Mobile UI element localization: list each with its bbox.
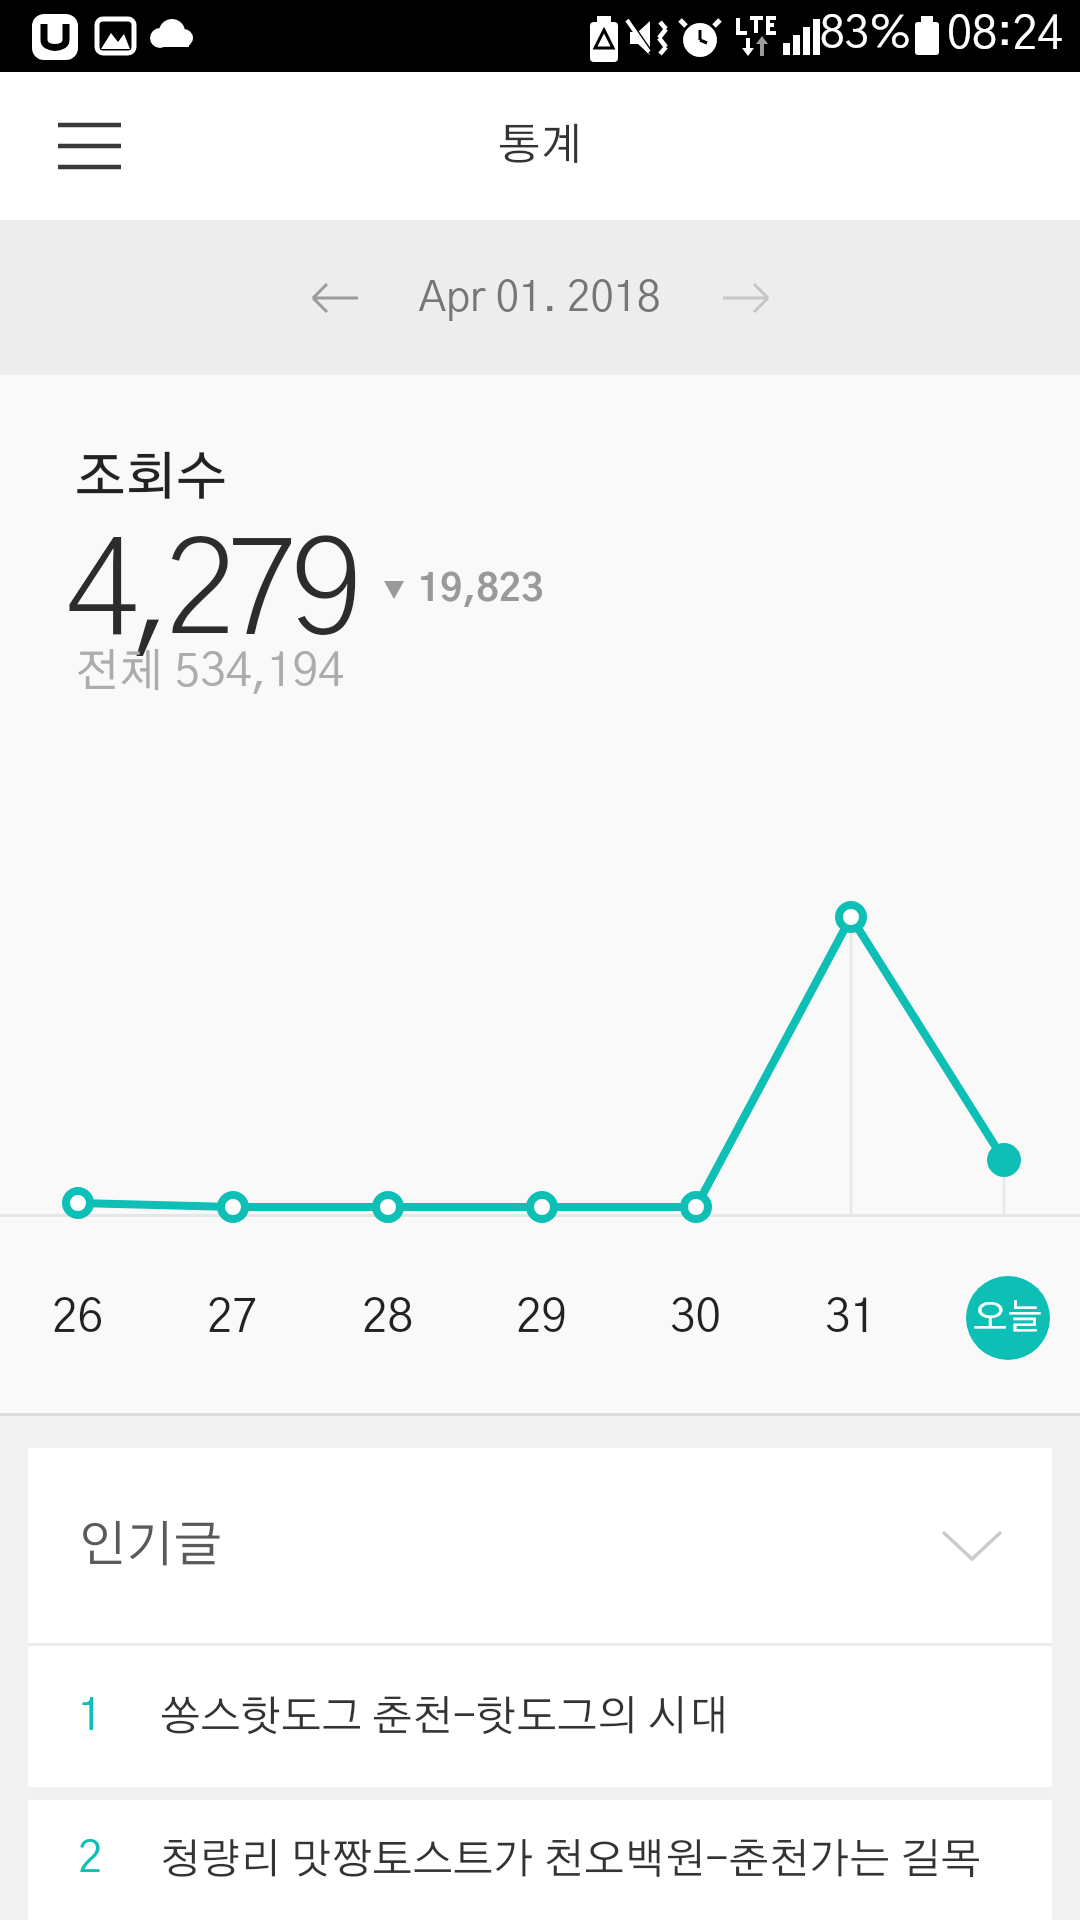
- staticText: 4,279: [66, 528, 355, 660]
- staticText: 전체 534,194: [75, 649, 344, 695]
- staticText: Apr 01. 2018: [419, 277, 661, 319]
- button[interactable]: 1: [28, 1646, 1052, 1787]
- staticText: 19,823: [418, 571, 544, 609]
- button[interactable]: [296, 258, 376, 338]
- staticText: 08:24: [947, 13, 1063, 58]
- staticText: 31: [825, 1295, 877, 1341]
- staticText: 쏭스핫도그 춘천-핫도그의 시대: [160, 1696, 729, 1738]
- staticText: 28: [362, 1295, 414, 1341]
- button[interactable]: 2: [28, 1800, 1052, 1920]
- staticText: 27: [207, 1295, 259, 1341]
- button[interactable]: 오늘: [966, 1276, 1050, 1360]
- staticText: 83%: [820, 13, 912, 57]
- staticText: 오늘: [973, 1300, 1043, 1336]
- staticText: 30: [670, 1295, 722, 1341]
- staticText: 청량리 맛짱토스트가 천오백원-춘천가는 길목: [160, 1839, 981, 1881]
- button[interactable]: [706, 258, 786, 338]
- staticText: 29: [516, 1295, 568, 1341]
- staticText: 인기글: [78, 1521, 223, 1571]
- button[interactable]: [40, 96, 140, 196]
- staticText: 26: [52, 1295, 104, 1341]
- staticText: 1: [78, 1695, 103, 1739]
- button[interactable]: 인기글: [28, 1448, 1052, 1643]
- staticText: 조회수: [75, 453, 227, 505]
- staticText: 2: [78, 1838, 103, 1882]
- staticText: 통계: [498, 124, 583, 168]
